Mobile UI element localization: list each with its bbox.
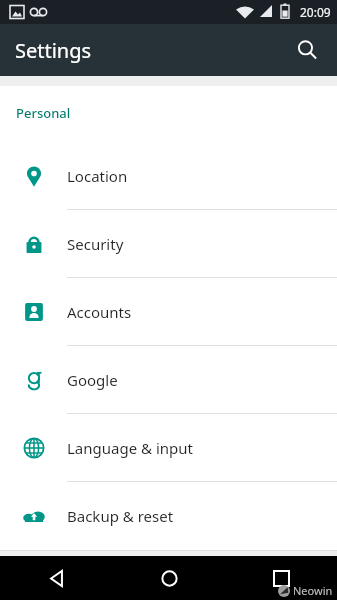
- staticText: Personal: [16, 104, 71, 122]
- staticText: 20:09: [300, 4, 331, 20]
- staticText: Security: [67, 234, 124, 254]
- staticText: Settings: [15, 37, 92, 64]
- staticText: Google: [67, 370, 118, 390]
- button[interactable]: Security: [0, 210, 337, 277]
- staticText: Language & input: [67, 438, 193, 458]
- button[interactable]: Recent apps: [225, 556, 337, 600]
- button[interactable]: Language & input: [0, 414, 337, 481]
- button[interactable]: Google: [0, 346, 337, 413]
- staticText: Accounts: [67, 302, 132, 322]
- staticText: Backup & reset: [67, 506, 174, 526]
- staticText: Location: [67, 166, 128, 186]
- button[interactable]: Location: [0, 142, 337, 209]
- button[interactable]: Accounts: [0, 278, 337, 345]
- button[interactable]: Backup & reset: [0, 482, 337, 549]
- button[interactable]: Search: [285, 28, 329, 72]
- button[interactable]: Back: [0, 556, 113, 600]
- staticText: Neowin: [293, 583, 333, 598]
- button[interactable]: Home: [113, 556, 225, 600]
